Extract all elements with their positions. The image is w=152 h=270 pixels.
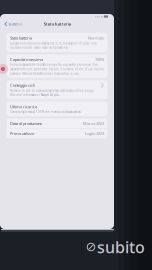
staticText: Batteria [8,21,22,27]
staticText: Marzo 2023 [83,121,104,126]
staticText: Carica completata al 100% con ricarica o… [10,110,81,114]
staticText: La batteria funziona normalmente e le pr… [10,42,97,45]
button[interactable]: Conteggio cicli [10,83,104,88]
staticText: Conteggio cicli [10,83,35,88]
staticText: 100% [95,57,104,62]
staticText: Ultima ricarica [10,104,37,109]
staticText: Primo utilizzo [10,131,34,136]
staticText: capacità inferiore potrebbe ridurre il n… [10,67,103,71]
staticText: 100% [95,15,103,18]
button[interactable]: Batteria [0,20,22,28]
staticText: Numero di cicli di ricarica completati d… [10,89,95,92]
staticText: Data di produzione [10,121,42,126]
staticText: Stato batteria [10,35,32,41]
staticText: subito [97,236,145,258]
staticText: Normale [88,35,104,41]
staticText: ricarica e l'altra della batteria del di… [10,72,80,75]
staticText: Luglio 2023 [85,131,104,136]
staticText: Indica la capacità della batteria rispet… [10,63,97,66]
staticText: risultano ridotte dallo stato della batt… [10,46,68,50]
staticText: Stato batteria [44,21,71,27]
staticText: Ulteriori informazioni [10,93,40,97]
staticText: Capacità massima [10,57,43,62]
staticText: Scopri di più. [41,93,60,97]
